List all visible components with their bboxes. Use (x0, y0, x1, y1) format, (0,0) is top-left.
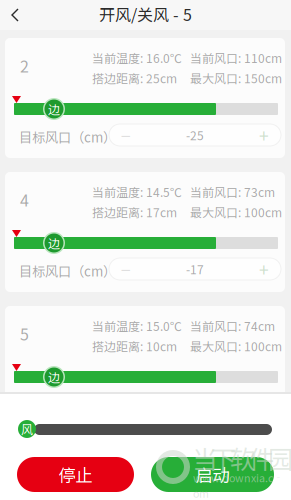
staticText: 当 (192, 440, 217, 476)
staticText: 搭边距离: 17cm (92, 203, 177, 221)
staticText: 当前风口: 73cm (190, 183, 275, 200)
staticText: + (259, 256, 269, 282)
staticText: 当前温度: 15.0℃ (92, 317, 182, 334)
staticText: 当前温度: 14.5℃ (92, 183, 182, 200)
staticText: 最大风口: 100cm (190, 337, 282, 355)
staticText: 件 (249, 440, 274, 476)
staticText: 边 (48, 100, 60, 118)
staticText: — (121, 261, 131, 277)
staticText: 5 (20, 322, 29, 345)
staticText: 园 (268, 440, 291, 476)
button[interactable]: — (109, 124, 281, 146)
staticText: 2 (20, 54, 29, 77)
staticText: 边 (48, 368, 60, 386)
staticText: 启动 (195, 462, 229, 487)
staticText: 目标风口（cm） (19, 261, 116, 280)
staticText: 当前风口: 74cm (190, 317, 275, 334)
staticText: 最大风口: 100cm (190, 203, 282, 221)
staticText: 停止 (58, 462, 92, 487)
staticText: www.downxia.com (193, 470, 284, 500)
staticText: 下 (211, 440, 236, 476)
button[interactable]: Back (1, 1, 29, 29)
staticText: 开风/关风 - 5 (99, 2, 192, 26)
staticText: — (121, 127, 131, 143)
button[interactable]: 启动 (151, 457, 274, 492)
staticText: 边 (48, 234, 60, 252)
staticText: 4 (20, 188, 29, 211)
staticText: 风 (21, 420, 33, 438)
staticText: 搭边距离: 25cm (92, 69, 177, 87)
staticText: 搭边距离: 10cm (92, 337, 177, 355)
staticText: 目标风口（cm） (19, 127, 116, 146)
staticText: + (259, 122, 269, 148)
staticText: 当前风口: 110cm (190, 49, 282, 66)
staticText: 当前温度: 16.0℃ (92, 49, 182, 66)
staticText: -25 (186, 126, 204, 144)
button[interactable]: 停止 (17, 457, 134, 492)
staticText: 软 (230, 440, 255, 476)
staticText: 最大风口: 150cm (190, 69, 282, 87)
staticText: -17 (186, 260, 204, 278)
button[interactable]: — (109, 258, 281, 280)
